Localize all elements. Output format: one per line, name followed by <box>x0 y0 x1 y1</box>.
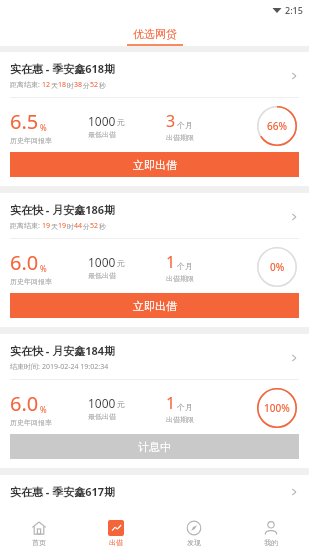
staticText: 个月 <box>177 120 193 130</box>
staticText: 最低出借 <box>88 271 116 280</box>
button[interactable]: 出借 <box>77 516 154 550</box>
staticText: 历史年回报率 <box>10 418 52 427</box>
button[interactable]: Details <box>287 485 301 499</box>
staticText: 1000 <box>88 113 116 129</box>
staticText: 发现 <box>187 538 201 547</box>
staticText: 分 <box>83 81 90 90</box>
staticText: 历史年回报率 <box>10 277 52 286</box>
staticText: 距离结束: <box>10 80 42 90</box>
staticText: 6.0 <box>10 390 39 417</box>
button[interactable]: 首页 <box>0 516 77 550</box>
staticText: 优选网贷 <box>133 27 177 41</box>
button[interactable]: Details <box>287 69 301 83</box>
staticText: 出借期限 <box>166 274 194 283</box>
staticText: 0% <box>270 260 285 274</box>
staticText: 元 <box>117 117 125 127</box>
staticText: 首页 <box>32 538 46 547</box>
staticText: 3 <box>166 110 176 132</box>
staticText: 时 <box>67 81 74 90</box>
staticText: 1000 <box>88 395 116 411</box>
staticText: 元 <box>117 399 125 409</box>
staticText: 1 <box>166 251 176 273</box>
staticText: 元 <box>117 258 125 268</box>
staticText: 分 <box>83 222 90 231</box>
staticText: 66% <box>267 119 287 133</box>
staticText: % <box>40 263 47 274</box>
staticText: 2019-02-24 19:02:34 <box>42 362 109 372</box>
staticText: 52 <box>90 80 99 90</box>
staticText: 个月 <box>177 402 193 412</box>
staticText: 实在快 - 月安鑫186期 <box>10 202 116 217</box>
button[interactable]: 我的 <box>232 516 309 550</box>
staticText: % <box>40 122 47 133</box>
button[interactable]: 立即出借 <box>10 152 299 177</box>
button[interactable]: 计息中 <box>10 434 299 459</box>
staticText: 44 <box>74 221 83 231</box>
staticText: 100% <box>264 401 290 415</box>
button[interactable]: 立即出借 <box>10 293 299 318</box>
staticText: 历史年回报率 <box>10 136 52 145</box>
staticText: 1000 <box>88 254 116 270</box>
staticText: 1 <box>166 392 176 414</box>
staticText: 实在快 - 月安鑫184期 <box>10 343 116 358</box>
staticText: 立即出借 <box>133 158 177 172</box>
staticText: 我的 <box>264 538 278 547</box>
staticText: % <box>40 404 47 415</box>
staticText: 距离结束: <box>10 221 42 231</box>
staticText: 计息中 <box>138 440 171 454</box>
staticText: 最低出借 <box>88 412 116 421</box>
staticText: 实在惠 - 季安鑫618期 <box>10 61 116 76</box>
staticText: 19 <box>42 221 51 231</box>
staticText: 最低出借 <box>88 130 116 139</box>
button[interactable]: Details <box>287 210 301 224</box>
staticText: 个月 <box>177 261 193 271</box>
staticText: 19 <box>58 221 67 231</box>
staticText: 6.5 <box>10 108 39 135</box>
staticText: 天 <box>51 81 58 90</box>
button[interactable]: 发现 <box>155 516 232 550</box>
staticText: 18 <box>58 80 67 90</box>
staticText: 出借 <box>109 538 123 547</box>
staticText: 结束时间: <box>10 362 42 372</box>
staticText: 52 <box>90 221 99 231</box>
staticText: 出借期限 <box>166 133 194 142</box>
staticText: 天 <box>51 222 58 231</box>
button[interactable]: 优选网贷 <box>121 27 189 41</box>
staticText: 立即出借 <box>133 299 177 313</box>
staticText: 2:15 <box>285 4 303 16</box>
staticText: 秒 <box>99 81 106 90</box>
staticText: 秒 <box>99 222 106 231</box>
staticText: 12 <box>42 80 51 90</box>
staticText: 38 <box>74 80 83 90</box>
staticText: 实在惠 - 季安鑫617期 <box>10 484 287 499</box>
staticText: 6.0 <box>10 249 39 276</box>
button[interactable]: Details <box>287 351 301 365</box>
staticText: 时 <box>67 222 74 231</box>
staticText: 出借期限 <box>166 415 194 424</box>
